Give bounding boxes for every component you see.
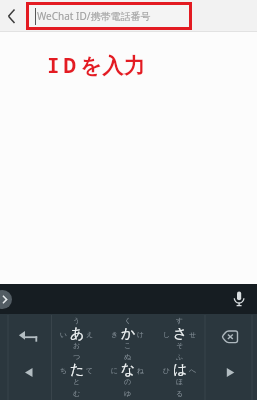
- staticText: け: [137, 330, 145, 339]
- button[interactable]: [4, 5, 24, 27]
- staticText: と: [73, 377, 81, 386]
- button[interactable]: [9, 352, 52, 389]
- button[interactable]: [154, 315, 205, 352]
- staticText: き: [111, 330, 119, 339]
- button[interactable]: [52, 351, 103, 388]
- staticText: ち: [60, 366, 68, 375]
- staticText: し: [163, 330, 171, 339]
- staticText: そ: [176, 341, 184, 350]
- staticText: く: [124, 316, 132, 325]
- staticText: の: [124, 377, 132, 386]
- staticText: む: [73, 389, 81, 398]
- staticText: こ: [124, 341, 132, 350]
- staticText: ひ: [163, 366, 171, 375]
- button[interactable]: [154, 388, 205, 400]
- button[interactable]: [103, 315, 154, 352]
- staticText: て: [86, 366, 94, 375]
- staticText: せ: [189, 330, 197, 339]
- staticText: つ: [73, 352, 81, 361]
- staticText: え: [86, 330, 94, 339]
- button[interactable]: [9, 315, 52, 352]
- button[interactable]: [103, 351, 154, 388]
- button[interactable]: [206, 352, 257, 389]
- staticText: さ: [173, 325, 188, 343]
- button[interactable]: [103, 388, 154, 400]
- button[interactable]: [0, 290, 12, 309]
- staticText: う: [73, 316, 81, 325]
- staticText: な: [121, 361, 136, 379]
- button[interactable]: [231, 286, 247, 308]
- button[interactable]: [52, 315, 103, 352]
- staticText: お: [73, 341, 81, 350]
- staticText: る: [176, 389, 184, 398]
- staticText: か: [121, 325, 136, 343]
- button[interactable]: [206, 315, 257, 352]
- staticText: い: [60, 330, 68, 339]
- staticText: は: [173, 361, 188, 379]
- button[interactable]: [154, 351, 205, 388]
- staticText: IDを入力: [47, 51, 146, 77]
- staticText: ふ: [176, 352, 184, 361]
- staticText: ゆ: [124, 389, 132, 398]
- staticText: あ: [70, 325, 85, 343]
- staticText: に: [111, 366, 119, 375]
- staticText: WeChat ID/携帯電話番号: [37, 9, 151, 23]
- staticText: ほ: [176, 377, 184, 386]
- staticText: ぬ: [124, 352, 132, 361]
- staticText: へ: [189, 366, 197, 375]
- staticText: ね: [137, 366, 145, 375]
- staticText: す: [176, 316, 184, 325]
- button[interactable]: WeChat ID/携帯電話番号: [26, 2, 192, 30]
- staticText: た: [70, 361, 85, 379]
- button[interactable]: [52, 388, 103, 400]
